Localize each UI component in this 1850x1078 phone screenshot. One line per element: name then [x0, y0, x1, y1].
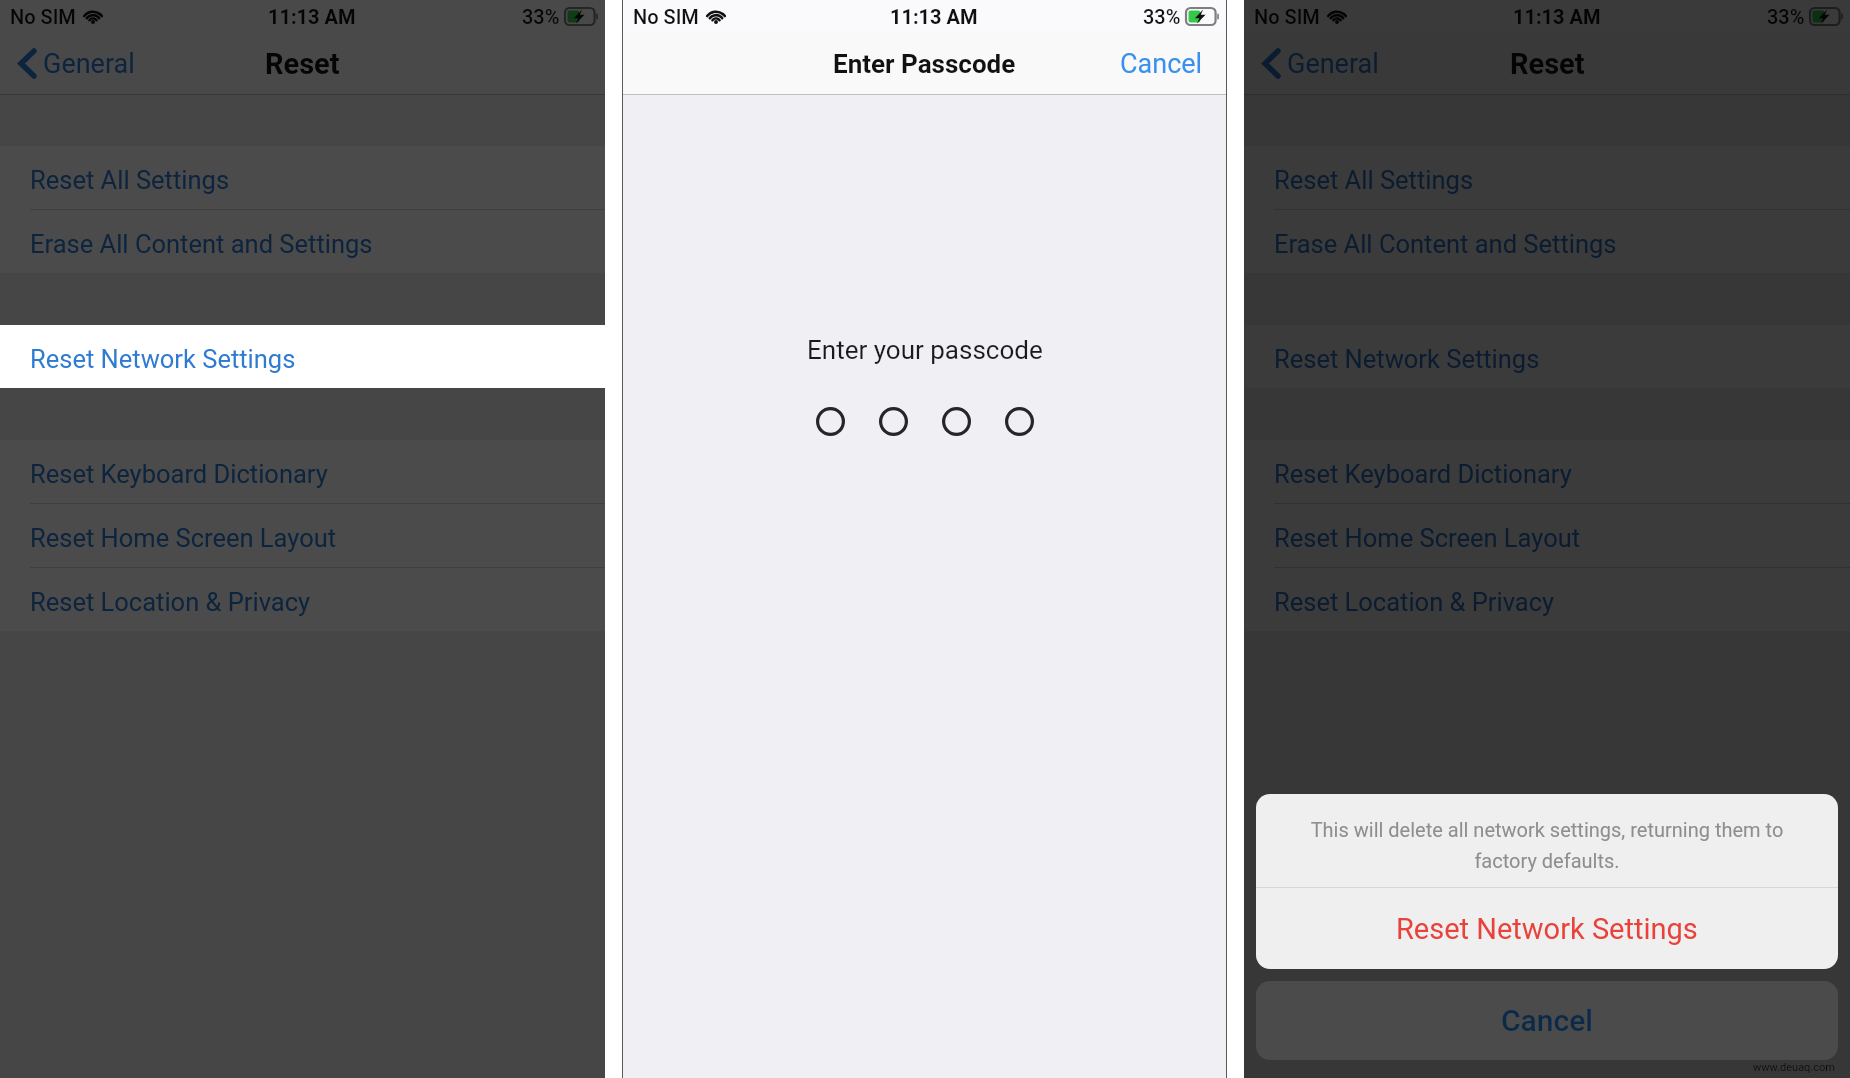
other: Battery charging [1186, 8, 1220, 25]
button[interactable]: Back to General [1244, 33, 1388, 94]
button[interactable]: Reset Network Settings [1244, 325, 1850, 388]
staticText: 11:13 AM [268, 5, 356, 28]
button[interactable]: Cancel [1094, 36, 1226, 92]
staticText: Reset [265, 47, 340, 81]
staticText: www.deuaq.com [1753, 1061, 1835, 1074]
button[interactable]: Reset All Settings [0, 146, 605, 209]
staticText: No SIM [1254, 5, 1320, 28]
button[interactable]: Back to General [0, 33, 144, 94]
staticText: Reset Keyboard Dictionary [1274, 459, 1572, 489]
staticText: General [43, 48, 135, 80]
other: Back to General [1263, 49, 1280, 78]
staticText: 11:13 AM [1513, 5, 1601, 28]
button[interactable]: Reset Keyboard Dictionary [0, 440, 605, 503]
staticText: Reset Network Settings [1274, 344, 1540, 374]
staticText: 33% [1767, 5, 1805, 28]
staticText: 33% [1143, 5, 1181, 28]
staticText: Reset Location & Privacy [1274, 587, 1555, 617]
button[interactable]: Erase All Content and Settings [0, 210, 605, 273]
staticText: This will delete all network settings, r… [1286, 818, 1808, 872]
staticText: No SIM [10, 5, 76, 28]
button[interactable]: Reset Keyboard Dictionary [1244, 440, 1850, 503]
staticText: Erase All Content and Settings [1274, 229, 1617, 259]
other: Wi-Fi [1327, 9, 1347, 24]
staticText: Reset Home Screen Layout [1274, 523, 1581, 553]
staticText: Erase All Content and Settings [30, 229, 373, 259]
button[interactable]: Reset Location & Privacy [1244, 568, 1850, 631]
staticText: 11:13 AM [890, 5, 978, 28]
other: Battery charging [1810, 8, 1844, 25]
staticText: Reset Home Screen Layout [30, 523, 337, 553]
button[interactable]: Erase All Content and Settings [1244, 210, 1850, 273]
staticText: Reset All Settings [1274, 165, 1474, 195]
button[interactable]: Reset Home Screen Layout [1244, 504, 1850, 567]
other: Wi-Fi [706, 9, 726, 24]
staticText: Enter your passcode [807, 335, 1043, 365]
other: Battery charging [565, 8, 599, 25]
staticText: Enter Passcode [833, 49, 1016, 79]
staticText: Cancel [1501, 1003, 1594, 1038]
other: Back to General [19, 49, 36, 78]
staticText: Reset Network Settings [1396, 912, 1698, 946]
staticText: Reset Keyboard Dictionary [30, 459, 328, 489]
staticText: Reset Location & Privacy [30, 587, 311, 617]
staticText: No SIM [633, 5, 699, 28]
staticText: Reset All Settings [30, 165, 230, 195]
button[interactable]: Reset All Settings [1244, 146, 1850, 209]
staticText: Reset [1510, 47, 1585, 81]
button[interactable]: Reset Network Settings [1256, 888, 1838, 969]
staticText: Reset Network Settings [30, 344, 296, 374]
staticText: General [1287, 48, 1379, 80]
other: Wi-Fi [83, 9, 103, 24]
button[interactable]: Reset Home Screen Layout [0, 504, 605, 567]
button[interactable]: Reset Network Settings [0, 325, 605, 388]
button[interactable]: Cancel [1256, 981, 1838, 1060]
staticText: 33% [522, 5, 560, 28]
button[interactable]: Reset Location & Privacy [0, 568, 605, 631]
staticText: Cancel [1120, 48, 1203, 80]
